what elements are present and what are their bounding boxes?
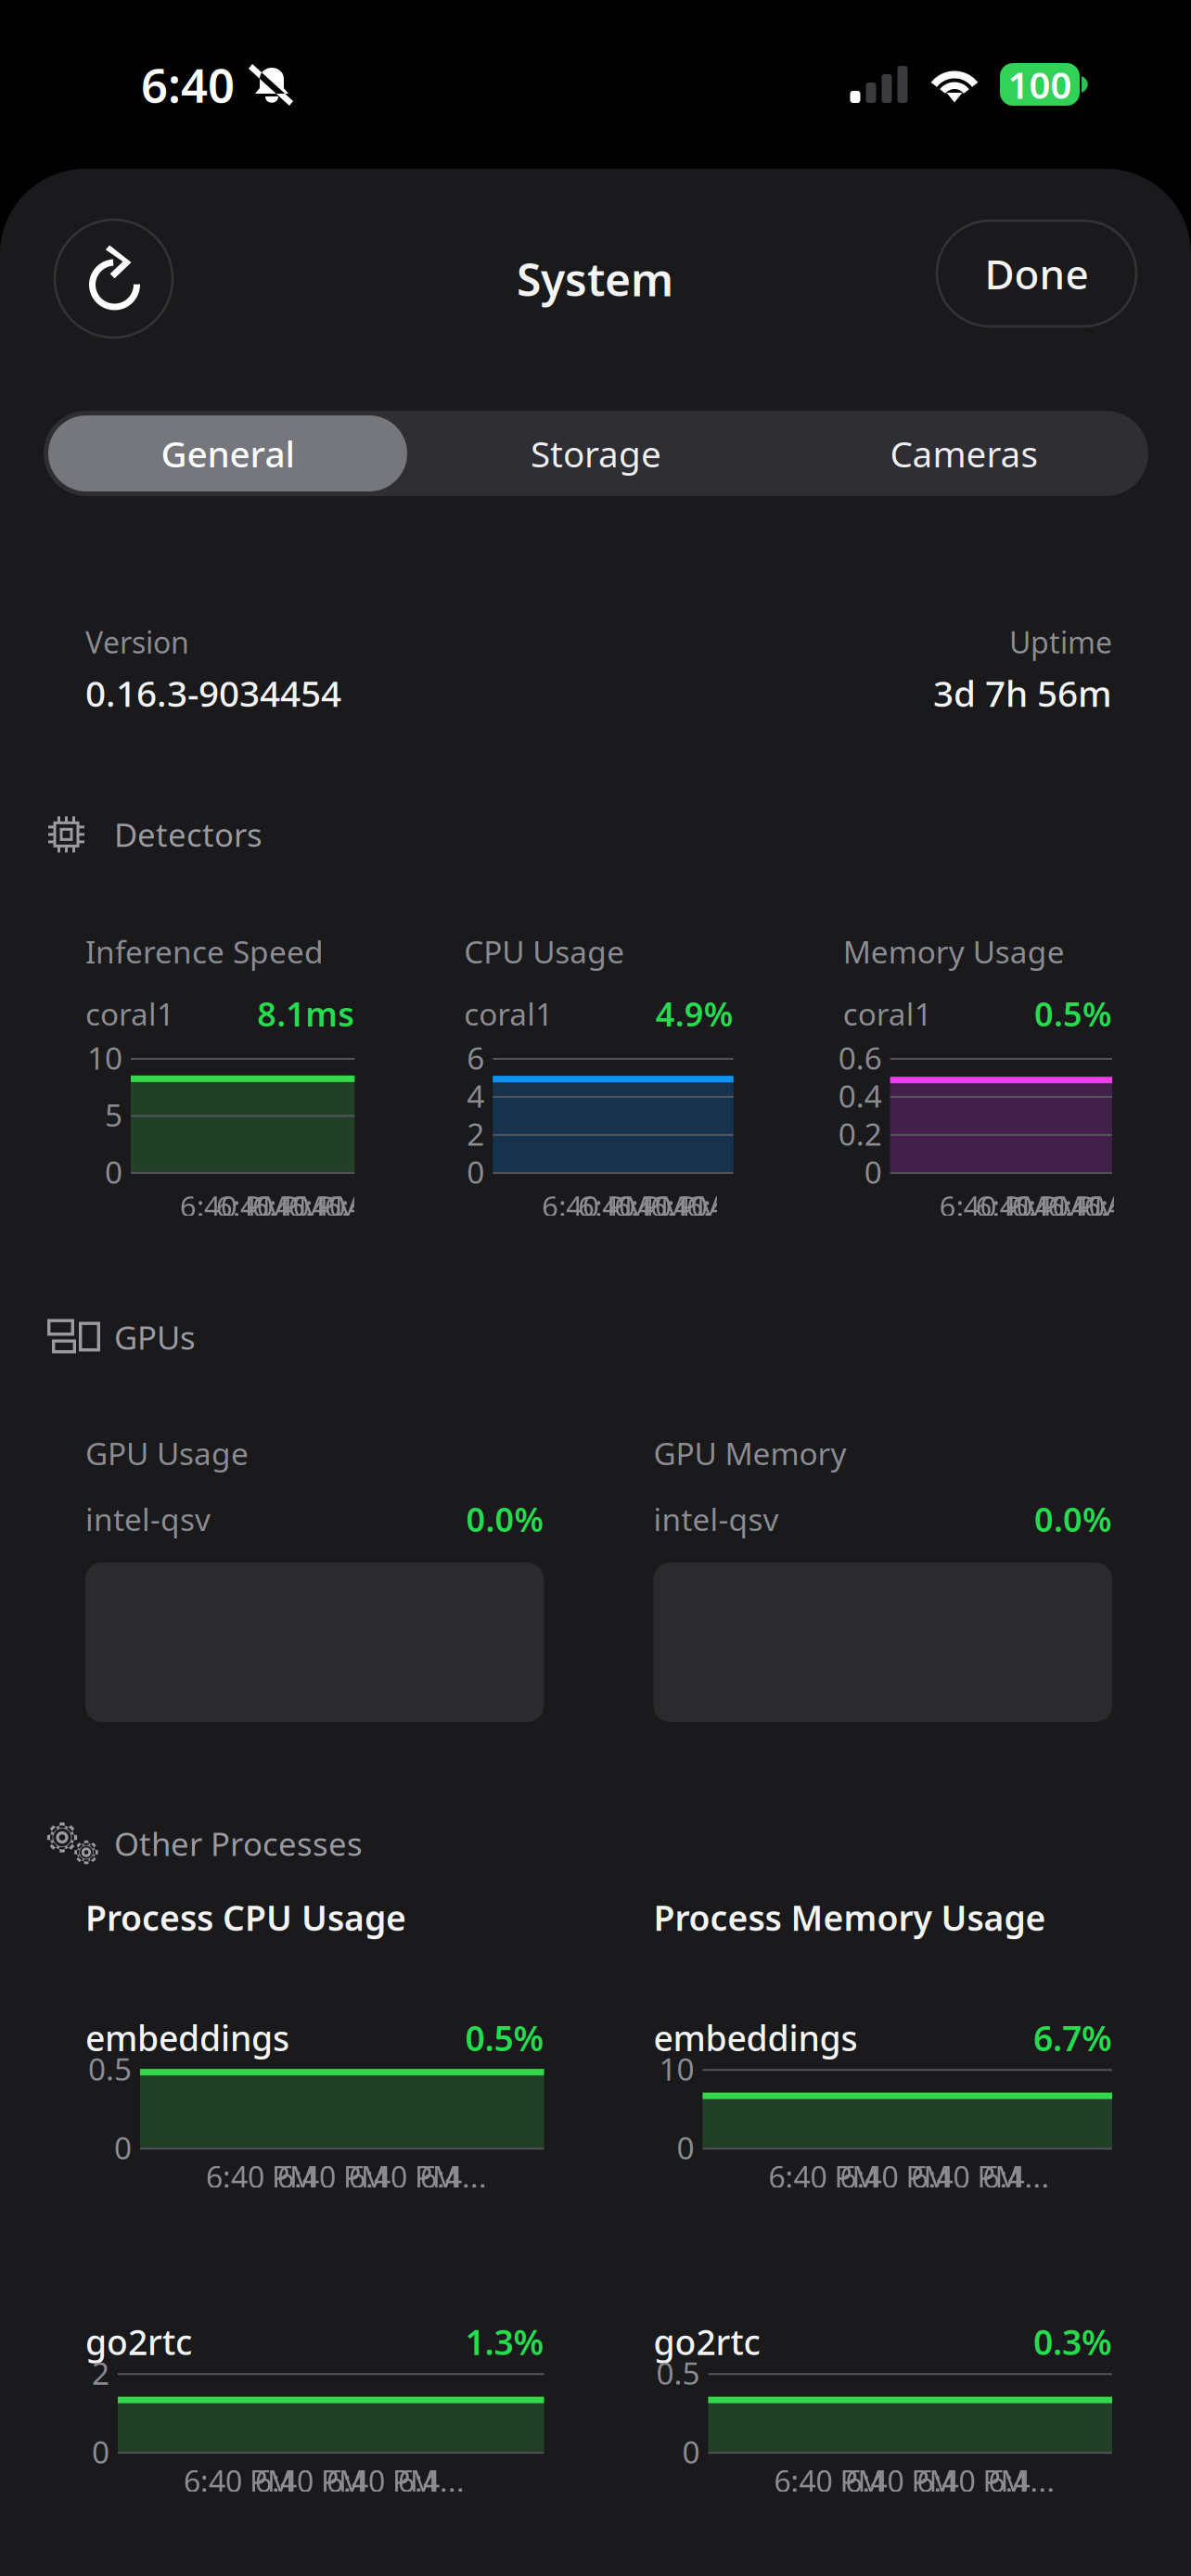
staticText: 0.0% xyxy=(1034,1497,1112,1541)
staticText: 6:40 PM xyxy=(216,1187,325,1225)
staticText: Inference Speed xyxy=(85,931,324,972)
staticText: Version xyxy=(85,622,189,662)
staticText: 0.2 xyxy=(838,1113,882,1154)
button[interactable]: General xyxy=(44,411,412,496)
staticText: 0.5% xyxy=(1034,991,1112,1036)
staticText: 0.5 xyxy=(88,2048,132,2089)
staticText: 0 xyxy=(92,2431,109,2472)
staticText: GPUs xyxy=(114,1316,196,1358)
staticText: 6:4... xyxy=(983,2157,1050,2196)
staticText: 0.5 xyxy=(656,2352,700,2393)
staticText: 6:40 PM xyxy=(327,2461,437,2501)
staticText: 6.7% xyxy=(1033,2015,1112,2061)
staticText: General xyxy=(161,430,295,477)
button[interactable]: Done xyxy=(937,221,1136,326)
staticText: 0 xyxy=(682,2431,700,2472)
staticText: go2rtc xyxy=(653,2319,760,2365)
staticText: embeddings xyxy=(85,2015,289,2061)
staticText: intel-qsv xyxy=(653,1498,779,1540)
staticText: Uptime xyxy=(1009,622,1112,662)
button[interactable]: Refresh xyxy=(55,220,173,338)
staticText: 10 xyxy=(87,1037,122,1078)
staticText: 0.4 xyxy=(838,1075,882,1116)
staticText: 6 xyxy=(467,1037,484,1078)
staticText: GPU Memory xyxy=(653,1433,846,1474)
staticText: 4 xyxy=(467,1075,484,1116)
staticText: Detectors xyxy=(114,813,263,856)
staticText: 6:40 PM xyxy=(939,1187,1048,1225)
staticText: 0 xyxy=(864,1151,882,1192)
staticText: 5 xyxy=(105,1094,122,1135)
staticText: Storage xyxy=(531,430,661,477)
staticText: 6:4... xyxy=(398,2461,465,2501)
staticText: 6:40 PM xyxy=(277,2157,388,2196)
staticText: 2 xyxy=(467,1113,484,1154)
staticText: 100 xyxy=(1008,60,1072,109)
staticText: 6:40 PM xyxy=(917,2461,1027,2501)
staticText: 6:40 PM xyxy=(1048,1187,1156,1225)
staticText: intel-qsv xyxy=(85,1498,211,1540)
staticText: 10 xyxy=(659,2048,694,2089)
staticText: 0.16.3-9034454 xyxy=(85,669,341,717)
staticText: Memory Usage xyxy=(843,931,1065,972)
staticText: 6:40 PM xyxy=(255,2461,365,2501)
staticText: CPU Usage xyxy=(464,931,625,972)
staticText: 0 xyxy=(677,2127,694,2168)
staticText: 0.6 xyxy=(838,1037,882,1078)
staticText: Process Memory Usage xyxy=(653,1894,1046,1940)
staticText: coral1 xyxy=(843,993,932,1034)
staticText: 6:4... xyxy=(325,1187,388,1225)
staticText: 6:4... xyxy=(988,2461,1055,2501)
staticText: 8.1ms xyxy=(257,991,355,1036)
staticText: 6:40 PM xyxy=(578,1187,687,1225)
staticText: 3d 7h 56m xyxy=(933,669,1112,717)
staticText: coral1 xyxy=(464,993,553,1034)
staticText: 6:40 PM xyxy=(542,1187,651,1225)
staticText: 0 xyxy=(114,2127,132,2168)
staticText: 6:40 PM xyxy=(288,1187,397,1225)
staticText: 6:40 PM xyxy=(845,2461,956,2501)
staticText: Done xyxy=(985,246,1089,301)
staticText: 6:40 PM xyxy=(206,2157,316,2196)
staticText: embeddings xyxy=(653,2015,858,2061)
staticText: System xyxy=(517,249,673,309)
staticText: 6:40 PM xyxy=(768,2157,879,2196)
staticText: 6:40 PM xyxy=(976,1187,1084,1225)
staticText: 4.9% xyxy=(656,991,733,1036)
staticText: 0.3% xyxy=(1033,2319,1112,2365)
staticText: 2 xyxy=(92,2352,109,2393)
staticText: 6:40 PM xyxy=(184,2461,294,2501)
staticText: 6:4... xyxy=(420,2157,487,2196)
staticText: coral1 xyxy=(85,993,174,1034)
staticText: 0 xyxy=(467,1151,484,1192)
staticText: go2rtc xyxy=(85,2319,192,2365)
button[interactable]: Cameras xyxy=(780,411,1148,496)
staticText: Cameras xyxy=(890,430,1038,477)
staticText: 0 xyxy=(105,1151,122,1192)
staticText: Process CPU Usage xyxy=(85,1894,406,1940)
staticText: 6:40 PM xyxy=(774,2461,884,2501)
staticText: 6:40 PM xyxy=(180,1187,288,1225)
staticText: 6:40 PM xyxy=(1012,1187,1120,1225)
staticText: Other Processes xyxy=(114,1822,363,1865)
staticText: 6:40 PM xyxy=(252,1187,361,1225)
staticText: GPU Usage xyxy=(85,1433,249,1474)
staticText: 6:40 PM xyxy=(840,2157,950,2196)
staticText: 0.5% xyxy=(465,2015,544,2061)
staticText: 6:40 xyxy=(141,53,235,116)
staticText: 6:4... xyxy=(1084,1187,1147,1225)
staticText: 0.0% xyxy=(466,1497,544,1541)
staticText: 1.3% xyxy=(465,2319,544,2365)
staticText: 6:4... xyxy=(687,1187,750,1225)
staticText: 6:40 PM xyxy=(349,2157,459,2196)
button[interactable]: Storage xyxy=(412,411,780,496)
staticText: 6:40 PM xyxy=(911,2157,1022,2196)
staticText: 6:40 PM xyxy=(651,1187,759,1225)
staticText: 6:40 PM xyxy=(614,1187,723,1225)
